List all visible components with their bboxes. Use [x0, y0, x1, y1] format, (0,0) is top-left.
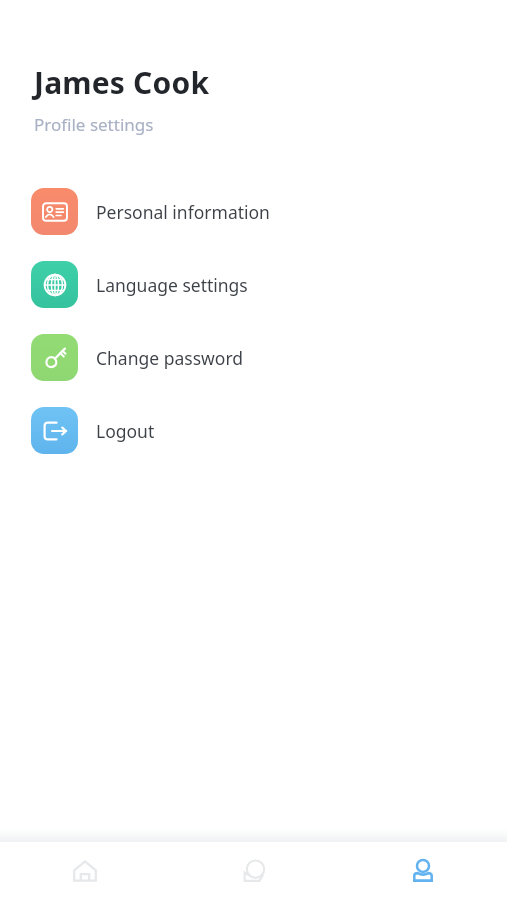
button[interactable]: Change password [0, 332, 507, 383]
staticText: James Cook [34, 62, 210, 103]
button[interactable]: Personal information [0, 186, 507, 237]
staticText: Language settings [96, 273, 248, 297]
staticText: Logout [96, 419, 155, 443]
button[interactable]: Language settings [0, 259, 507, 310]
button[interactable]: Messages [169, 842, 338, 900]
staticText: Change password [96, 346, 244, 370]
button[interactable]: Home [0, 842, 169, 900]
button[interactable]: Logout [0, 405, 507, 456]
button[interactable]: Profile [338, 842, 507, 900]
staticText: Profile settings [34, 113, 154, 136]
staticText: Personal information [96, 200, 270, 224]
